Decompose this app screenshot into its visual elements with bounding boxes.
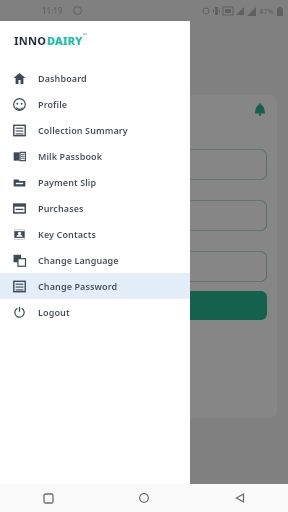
staticText: Collection Summary (38, 124, 128, 136)
button[interactable]: Change Language (0, 247, 190, 273)
button[interactable]: Payment Slip (0, 169, 190, 195)
button[interactable]: Home (96, 484, 192, 512)
button[interactable]: Change Password (0, 273, 190, 299)
staticText: Milk Passbook (38, 150, 103, 162)
staticText: Profile (38, 98, 68, 110)
staticText: Key Contacts (38, 228, 96, 240)
button[interactable]: Back (192, 484, 288, 512)
staticText: Logout (38, 306, 70, 318)
button[interactable]: Dashboard (0, 65, 190, 91)
staticText: Change Password (38, 280, 118, 292)
button[interactable] (18, 291, 267, 320)
staticText: 11:19 (42, 5, 63, 16)
staticText: INNO (14, 33, 47, 48)
button[interactable]: Key Contacts (0, 221, 190, 247)
button[interactable]: Recents (0, 484, 96, 512)
staticText: Dashboard (38, 72, 87, 84)
button[interactable]: Milk Passbook (0, 143, 190, 169)
button[interactable] (18, 149, 267, 180)
button[interactable]: Logout (0, 299, 190, 325)
button[interactable] (18, 251, 267, 282)
button[interactable]: Collection Summary (0, 117, 190, 143)
staticText: 47% (259, 6, 274, 16)
button[interactable] (18, 200, 267, 231)
button[interactable]: Profile (0, 91, 190, 117)
staticText: Payment Slip (38, 176, 97, 188)
button[interactable]: Purchases (0, 195, 190, 221)
staticText: Purchases (38, 202, 84, 214)
staticText: Change Language (38, 254, 119, 266)
staticText: DAIRY (47, 33, 83, 48)
staticText: ™ (83, 32, 87, 39)
button[interactable]: Notifications (252, 103, 268, 119)
